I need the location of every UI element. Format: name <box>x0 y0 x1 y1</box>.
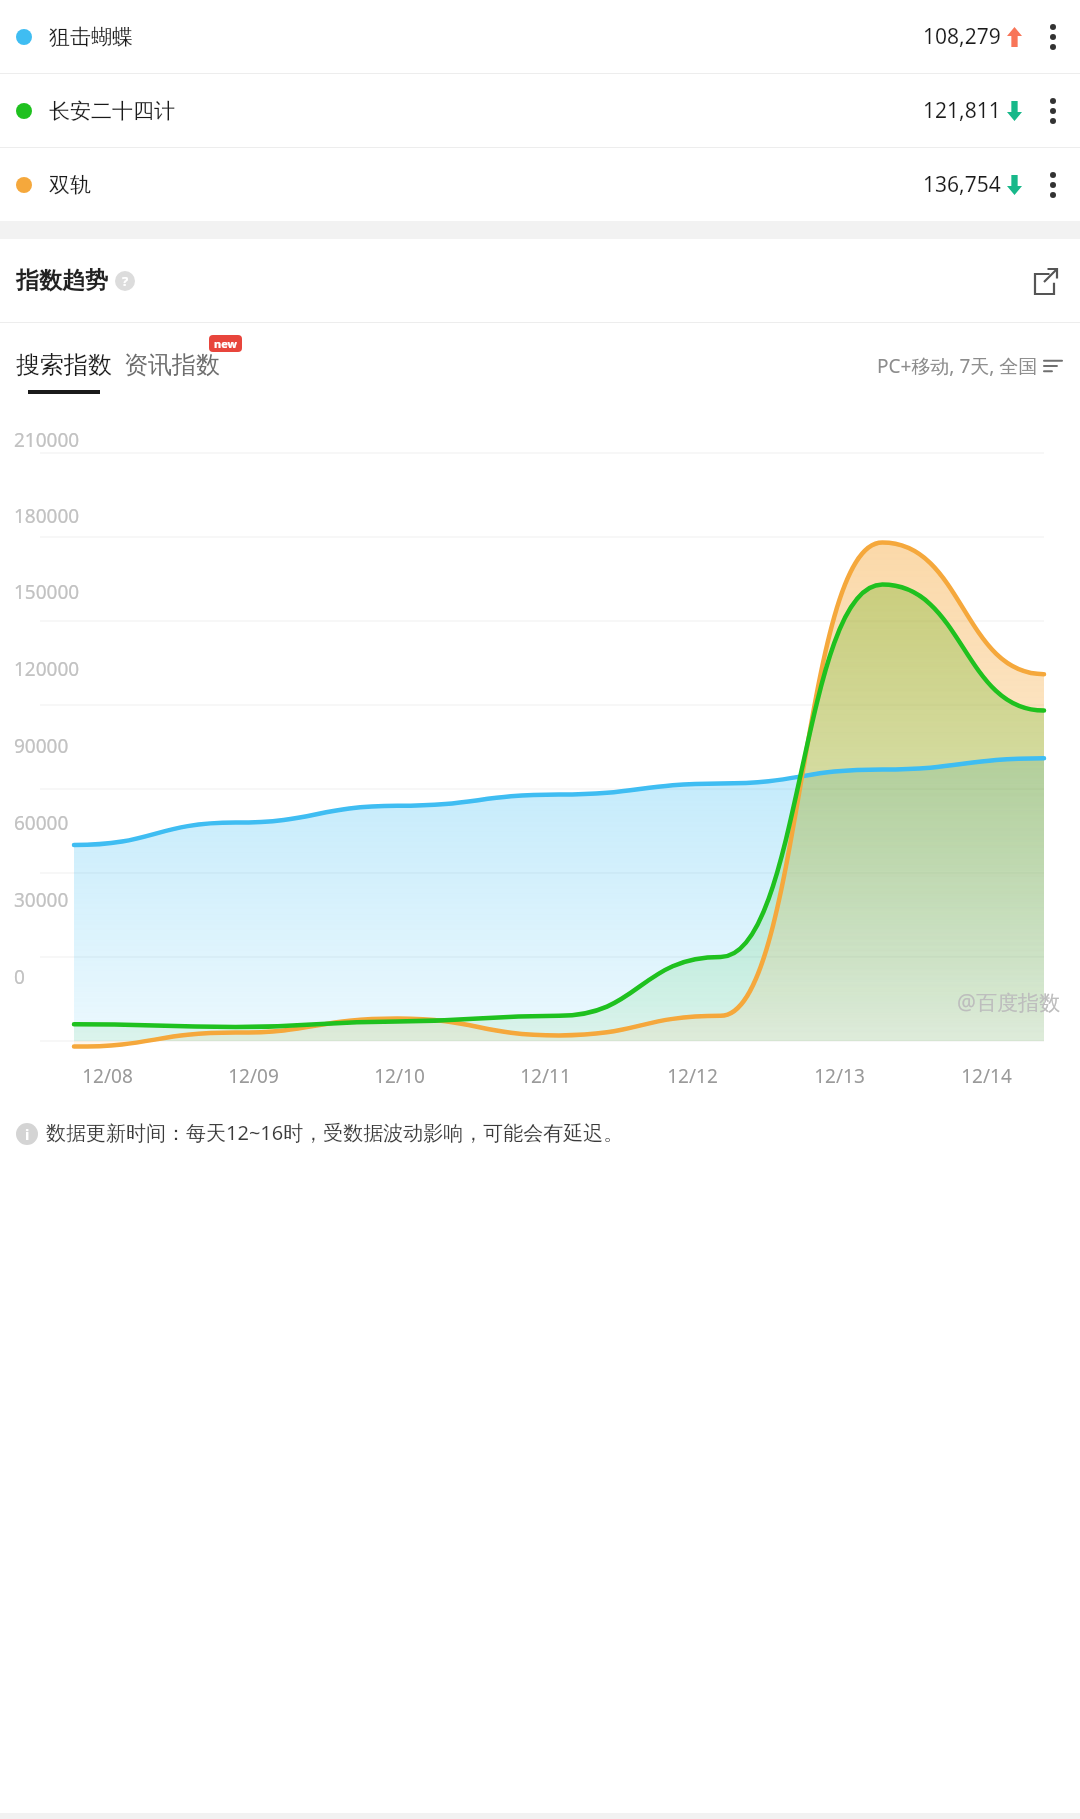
staticText: 180000 <box>14 503 80 529</box>
button[interactable]: PC+移动, 7天, 全国 <box>877 353 1062 391</box>
button[interactable]: More options <box>1036 168 1070 202</box>
staticText: 90000 <box>14 733 69 759</box>
button[interactable]: Help <box>115 271 135 291</box>
button[interactable]: 资讯指数 <box>124 350 220 394</box>
staticText: 136,754 <box>923 170 1001 199</box>
staticText: 搜索指数 <box>16 350 112 380</box>
staticText: 12/13 <box>814 1063 865 1089</box>
staticText: 30000 <box>14 887 69 913</box>
staticText: 12/08 <box>82 1063 133 1089</box>
staticText: 12/11 <box>520 1063 571 1089</box>
staticText: ? <box>122 272 129 290</box>
staticText: 150000 <box>14 579 80 605</box>
button[interactable]: 狙击蝴蝶 <box>0 0 1080 73</box>
button[interactable]: More options <box>1036 94 1070 128</box>
staticText: 12/10 <box>374 1063 425 1089</box>
staticText: 双轨 <box>49 172 91 198</box>
staticText: 108,279 <box>923 22 1001 51</box>
staticText: @百度指数 <box>957 988 1060 1017</box>
staticText: PC+移动, 7天, 全国 <box>877 353 1038 379</box>
staticText: 12/14 <box>961 1063 1012 1089</box>
staticText: 0 <box>14 964 25 990</box>
staticText: 121,811 <box>923 96 1001 125</box>
staticText: 12/09 <box>228 1063 279 1089</box>
button[interactable]: More options <box>1036 20 1070 54</box>
staticText: 数据更新时间：每天12~16时，受数据波动影响，可能会有延迟。 <box>46 1119 624 1146</box>
button[interactable]: 长安二十四计 <box>0 74 1080 147</box>
button[interactable]: 搜索指数 <box>16 350 112 394</box>
staticText: 120000 <box>14 656 80 682</box>
staticText: 长安二十四计 <box>49 98 175 124</box>
button[interactable]: Open full chart <box>1026 263 1062 299</box>
staticText: 指数趋势 <box>16 266 108 295</box>
staticText: new <box>214 336 237 351</box>
staticText: 狙击蝴蝶 <box>49 24 133 50</box>
staticText: 资讯指数 <box>124 350 220 380</box>
staticText: 210000 <box>14 427 80 453</box>
staticText: 60000 <box>14 810 69 836</box>
staticText: 12/12 <box>667 1063 718 1089</box>
button[interactable]: 双轨 <box>0 148 1080 221</box>
staticText: i <box>25 1125 30 1144</box>
